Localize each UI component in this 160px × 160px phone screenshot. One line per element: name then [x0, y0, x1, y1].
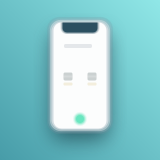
button[interactable]: Card [87, 72, 97, 86]
button[interactable]: Compose [72, 111, 87, 126]
button[interactable]: Card [63, 72, 73, 86]
